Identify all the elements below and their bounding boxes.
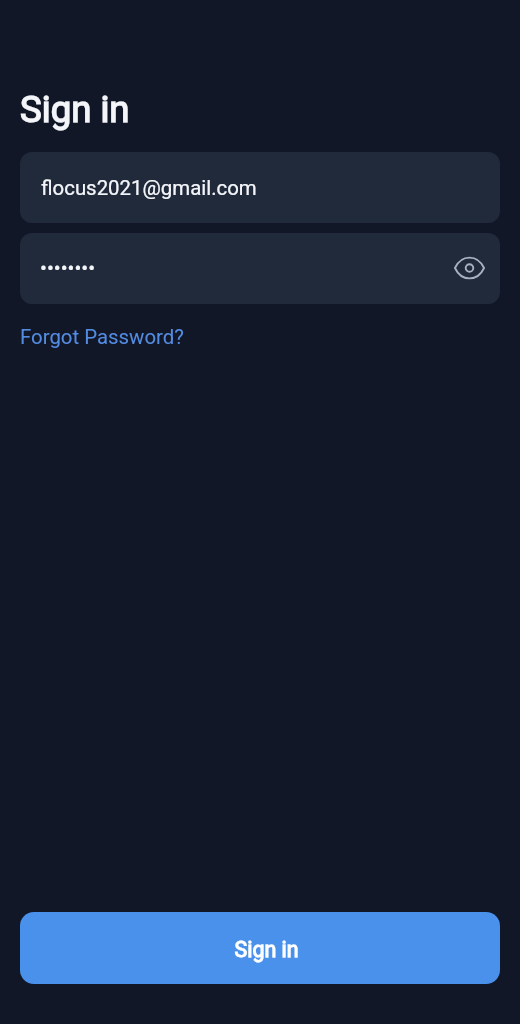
button[interactable]: flocus2021@gmail.com — [20, 152, 500, 223]
staticText: flocus2021@gmail.com — [41, 176, 257, 200]
button[interactable]: •••••••• — [20, 233, 500, 304]
button[interactable]: Forgot Password? — [20, 323, 184, 351]
staticText: Sign in — [20, 88, 130, 131]
button[interactable]: Sign in — [20, 912, 500, 984]
staticText: •••••••• — [40, 256, 96, 280]
button[interactable]: Show password — [447, 246, 491, 290]
staticText: Forgot Password? — [20, 325, 184, 349]
staticText: Sign in — [234, 937, 299, 962]
